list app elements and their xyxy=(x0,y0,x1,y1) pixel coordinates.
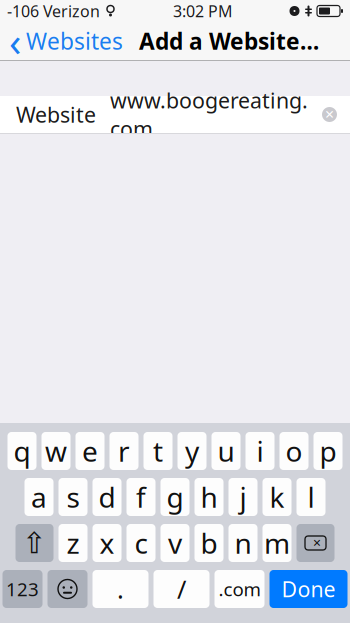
staticText: ⇧ xyxy=(22,526,47,560)
staticText: f xyxy=(136,478,146,516)
staticText: .com xyxy=(218,577,260,601)
button[interactable]: Emoji keyboard xyxy=(47,570,87,608)
staticText: q xyxy=(13,432,30,470)
button[interactable]: y xyxy=(177,432,206,470)
staticText: m xyxy=(264,524,290,562)
button[interactable]: n xyxy=(228,524,257,562)
staticText: -106 Verizon xyxy=(7,0,100,22)
staticText: n xyxy=(234,524,251,562)
button[interactable]: Website xyxy=(0,96,350,133)
staticText: Website xyxy=(16,100,96,129)
button[interactable]: 123 xyxy=(2,570,42,608)
staticText: w xyxy=(45,432,67,470)
button[interactable]: l xyxy=(296,478,325,516)
staticText: y xyxy=(185,432,199,470)
button[interactable]: c xyxy=(126,524,155,562)
button[interactable]: t xyxy=(143,432,172,470)
button[interactable]: . xyxy=(92,570,148,608)
button[interactable]: d xyxy=(92,478,121,516)
staticText: ✕ xyxy=(324,108,334,121)
button[interactable]: x xyxy=(92,524,121,562)
staticText: t xyxy=(153,432,163,470)
button[interactable]: h xyxy=(194,478,223,516)
staticText: e xyxy=(82,432,98,470)
staticText: k xyxy=(269,478,284,516)
button[interactable]: Delete xyxy=(296,524,334,562)
button[interactable]: w xyxy=(41,432,70,470)
button[interactable]: / xyxy=(153,570,209,608)
staticText: a xyxy=(31,478,47,516)
staticText: x xyxy=(99,524,114,562)
button[interactable]: b xyxy=(194,524,223,562)
button[interactable]: s xyxy=(58,478,87,516)
staticText: . xyxy=(117,572,124,606)
staticText: ✕ xyxy=(312,537,321,549)
staticText: 123 xyxy=(6,577,39,601)
staticText: 3:02 PM xyxy=(173,0,233,22)
staticText: g xyxy=(166,478,183,516)
staticText: Done xyxy=(281,575,335,603)
button[interactable]: Done xyxy=(269,570,347,608)
button[interactable]: q xyxy=(7,432,36,470)
staticText: p xyxy=(319,432,336,470)
button[interactable]: .com xyxy=(214,570,264,608)
button[interactable]: z xyxy=(58,524,87,562)
staticText: o xyxy=(285,432,302,470)
button[interactable]: e xyxy=(75,432,104,470)
button[interactable]: g xyxy=(160,478,189,516)
staticText: l xyxy=(307,478,314,516)
button[interactable]: f xyxy=(126,478,155,516)
button[interactable]: i xyxy=(245,432,274,470)
staticText: / xyxy=(177,572,186,606)
button[interactable]: u xyxy=(211,432,240,470)
button[interactable]: v xyxy=(160,524,189,562)
staticText: u xyxy=(217,432,234,470)
button[interactable]: m xyxy=(262,524,291,562)
staticText: v xyxy=(168,524,182,562)
button[interactable]: o xyxy=(279,432,308,470)
staticText: r xyxy=(118,432,130,470)
staticText: d xyxy=(98,478,115,516)
staticText: z xyxy=(66,524,79,562)
staticText: j xyxy=(239,478,246,516)
button[interactable]: p xyxy=(313,432,342,470)
staticText: s xyxy=(66,478,79,516)
staticText: i xyxy=(256,432,263,470)
staticText: www.boogereating.com xyxy=(110,86,308,143)
button[interactable]: k xyxy=(262,478,291,516)
staticText: b xyxy=(200,524,217,562)
staticText: Add a Website… xyxy=(139,26,319,56)
staticText: Websites xyxy=(26,26,123,56)
button[interactable]: Shift xyxy=(15,524,53,562)
button[interactable]: j xyxy=(228,478,257,516)
staticText: ‹ xyxy=(9,14,21,67)
staticText: h xyxy=(200,478,217,516)
button[interactable]: a xyxy=(24,478,53,516)
button[interactable]: ‹ xyxy=(0,10,123,71)
staticText: c xyxy=(134,524,147,562)
button[interactable]: r xyxy=(109,432,138,470)
